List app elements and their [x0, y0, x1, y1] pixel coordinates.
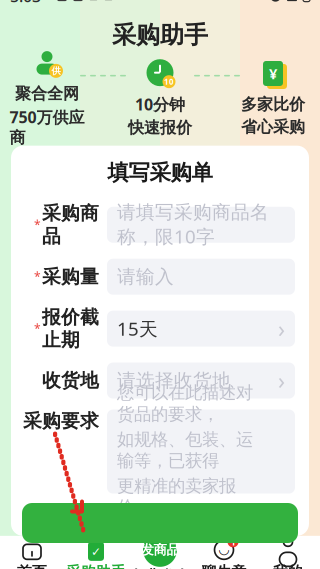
staticText: 我的 — [273, 563, 303, 569]
staticText: 聊生意 — [201, 563, 246, 569]
staticText: 采购要求 — [23, 410, 99, 432]
staticText: 省心采购 — [241, 117, 305, 137]
button[interactable]: 首页 — [0, 536, 64, 569]
staticText: 10分钟 — [135, 94, 185, 115]
button[interactable]: * — [11, 202, 309, 248]
staticText: ¥ — [269, 64, 277, 83]
staticText: 多家比价 — [241, 94, 305, 114]
staticText: 1 — [230, 536, 235, 548]
staticText: 首页 — [17, 563, 47, 569]
staticText: 5:03 — [10, 0, 41, 7]
staticText: 发商品 — [140, 542, 179, 558]
staticText: ✓ — [91, 545, 101, 559]
staticText: 采购助手 — [66, 563, 126, 569]
staticText: 您可以在此描述对货品的要求， — [117, 382, 253, 425]
staticText: 请选择收货地 — [117, 369, 231, 392]
staticText: 收货地 — [42, 369, 99, 392]
staticText: 如规格、包装、运输等，已获得 — [117, 429, 253, 471]
staticText: 更精准的卖家报价。 — [117, 475, 236, 518]
staticText: 10 — [164, 76, 174, 87]
staticText: 采购商品 — [42, 202, 99, 248]
staticText: 供 — [51, 65, 60, 77]
button[interactable]: * — [11, 259, 309, 295]
staticText: 采购助手 — [112, 20, 208, 50]
staticText: * — [34, 269, 41, 285]
staticText: 填写采购单 — [107, 160, 212, 186]
staticText: 请填写采购商品名称，限10字 — [117, 201, 269, 249]
button[interactable]: ◡ — [192, 536, 256, 569]
staticText: 聚合全网 — [15, 84, 79, 104]
staticText: › — [278, 314, 285, 344]
button[interactable]: ✓ — [64, 536, 128, 569]
staticText: 免费发布 — [130, 567, 190, 569]
staticText: 750万供应商 — [9, 106, 84, 147]
staticText: ◡ — [219, 541, 229, 556]
staticText: 15天 — [117, 316, 158, 341]
staticText: * — [34, 321, 41, 337]
staticText: 请输入 — [117, 265, 174, 288]
staticText: 快速报价 — [128, 118, 192, 138]
staticText: * — [34, 217, 41, 233]
staticText: 报价截止期 — [42, 306, 99, 352]
button[interactable]: 发商品 — [128, 536, 192, 569]
button[interactable]: 收货地 — [11, 363, 309, 399]
staticText: 采购量 — [42, 265, 99, 288]
button[interactable]: 我的 — [256, 536, 320, 569]
button[interactable]: 提交 — [0, 503, 320, 543]
staticText: › — [278, 365, 285, 396]
button[interactable]: * — [11, 306, 309, 352]
